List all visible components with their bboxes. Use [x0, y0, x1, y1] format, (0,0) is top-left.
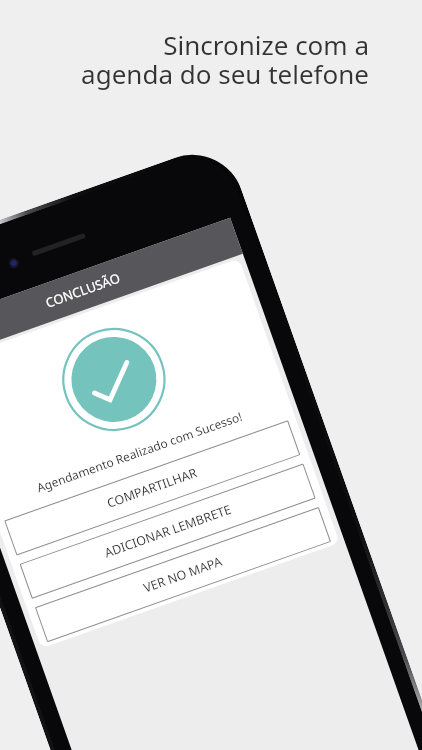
- button[interactable]: VER NO MAPA: [35, 507, 331, 642]
- staticText: Sincronize com a agenda do seu telefone: [0, 27, 369, 91]
- staticText: Agendamento Realizado com Sucesso!: [34, 408, 244, 495]
- staticText: ADICIONAR LEMBRETE: [102, 501, 234, 561]
- staticText: COMPARTILHAR: [105, 464, 200, 512]
- button[interactable]: COMPARTILHAR: [4, 420, 300, 556]
- button[interactable]: ADICIONAR LEMBRETE: [20, 463, 316, 599]
- staticText: VER NO MAPA: [141, 553, 225, 596]
- button[interactable]: CONCLUSÃO: [0, 218, 243, 363]
- staticText: CONCLUSÃO: [43, 269, 123, 312]
